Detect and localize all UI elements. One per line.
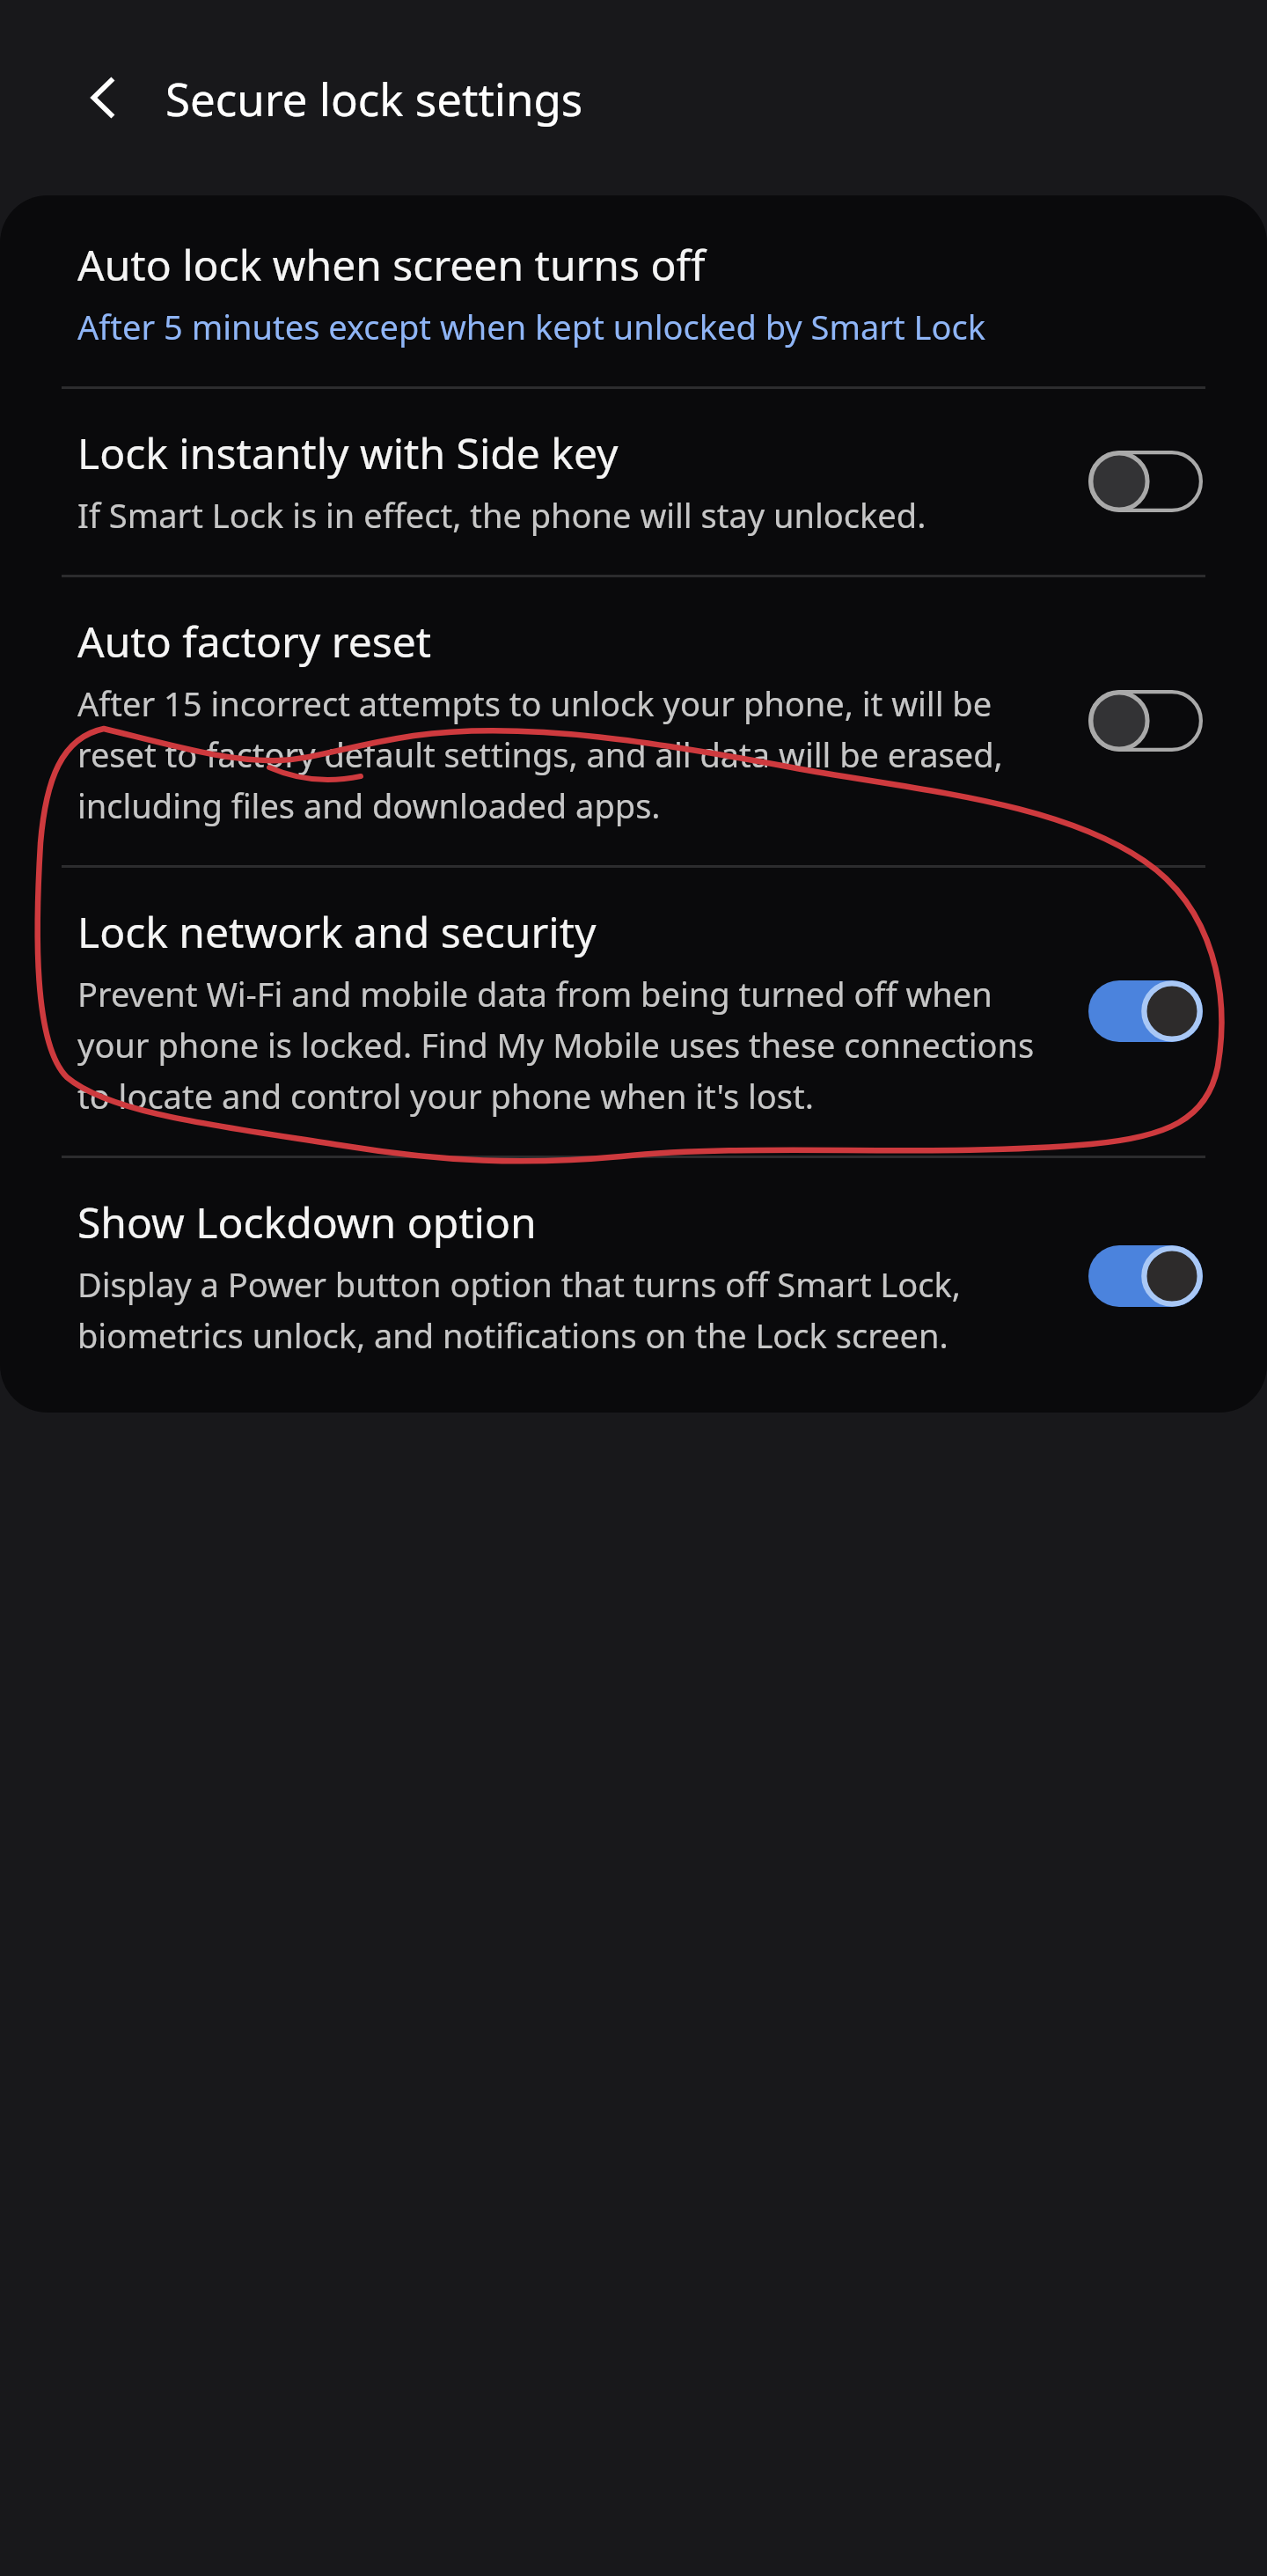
button[interactable]: Auto factory reset: [1080, 675, 1211, 767]
button[interactable]: Lock instantly with Side key: [0, 389, 1267, 575]
staticText: Prevent Wi-Fi and mobile data from being…: [77, 971, 1063, 1119]
button[interactable]: Lock network and security: [0, 868, 1267, 1156]
button[interactable]: Show Lockdown option: [1080, 1230, 1211, 1322]
staticText: After 5 minutes except when kept unlocke…: [77, 304, 986, 349]
button[interactable]: Navigate up: [63, 57, 144, 138]
staticText: Auto factory reset: [77, 613, 432, 670]
staticText: Secure lock settings: [165, 68, 583, 128]
staticText: After 15 incorrect attempts to unlock yo…: [77, 680, 1063, 828]
button[interactable]: Lock instantly with Side key: [1080, 436, 1211, 527]
staticText: Show Lockdown option: [77, 1193, 537, 1251]
button[interactable]: Auto factory reset: [0, 577, 1267, 865]
button[interactable]: Show Lockdown option: [0, 1158, 1267, 1413]
button[interactable]: Lock network and security: [1080, 965, 1211, 1057]
staticText: If Smart Lock is in effect, the phone wi…: [77, 492, 926, 538]
staticText: Lock network and security: [77, 903, 597, 960]
staticText: Lock instantly with Side key: [77, 424, 619, 481]
staticText: Display a Power button option that turns…: [77, 1261, 1063, 1358]
button[interactable]: Auto lock when screen turns off: [0, 195, 1267, 386]
staticText: Auto lock when screen turns off: [77, 236, 706, 293]
